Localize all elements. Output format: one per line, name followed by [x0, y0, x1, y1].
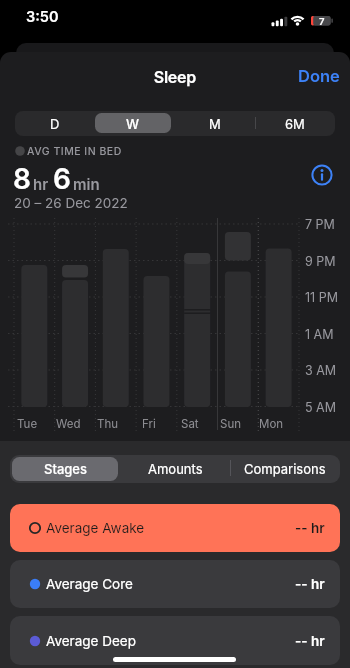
staticText: Done: [298, 66, 340, 86]
button[interactable]: W: [93, 111, 173, 136]
staticText: M: [209, 116, 221, 132]
staticText: 5 AM: [305, 400, 337, 415]
button[interactable]: Average Awake: [10, 504, 340, 552]
staticText: Average Awake: [46, 520, 145, 536]
staticText: 7: [319, 16, 325, 27]
staticText: Amounts: [148, 461, 203, 477]
button[interactable]: M: [175, 111, 255, 136]
staticText: Sun: [220, 417, 241, 431]
staticText: Mon: [259, 417, 284, 431]
staticText: Average Core: [46, 576, 133, 592]
staticText: Sat: [181, 417, 199, 431]
staticText: Sleep: [154, 67, 196, 86]
button[interactable]: Done: [280, 65, 340, 87]
button[interactable]: Average Deep: [10, 616, 340, 665]
button[interactable]: Amounts: [120, 455, 230, 482]
staticText: 20 – 26 Dec 2022: [14, 195, 128, 211]
button[interactable]: 6M: [255, 111, 335, 136]
staticText: D: [50, 116, 60, 132]
button[interactable]: Comparisons: [230, 455, 340, 482]
staticText: 3 AM: [305, 363, 337, 378]
staticText: 9 PM: [305, 254, 336, 269]
staticText: 3:50: [26, 8, 59, 26]
staticText: 6M: [285, 116, 305, 132]
staticText: -- hr: [295, 576, 325, 592]
staticText: AVG TIME IN BED: [27, 145, 122, 158]
staticText: Stages: [44, 461, 87, 477]
staticText: -- hr: [295, 633, 325, 649]
button[interactable]: [308, 161, 336, 189]
staticText: Thu: [97, 417, 119, 431]
staticText: Fri: [142, 417, 156, 431]
staticText: Tue: [17, 417, 38, 431]
staticText: 11 PM: [305, 290, 338, 305]
button[interactable]: Stages: [10, 455, 120, 482]
staticText: Average Deep: [46, 633, 136, 649]
staticText: min: [73, 175, 100, 193]
staticText: 7 PM: [305, 217, 335, 232]
staticText: 1 AM: [305, 327, 334, 342]
staticText: 6: [53, 162, 71, 196]
button[interactable]: D: [15, 111, 95, 136]
staticText: 8: [13, 162, 31, 196]
staticText: Comparisons: [244, 461, 326, 477]
staticText: Wed: [56, 417, 81, 431]
staticText: hr: [33, 175, 49, 193]
staticText: W: [126, 116, 140, 132]
button[interactable]: Average Core: [10, 560, 340, 608]
staticText: -- hr: [295, 520, 325, 536]
